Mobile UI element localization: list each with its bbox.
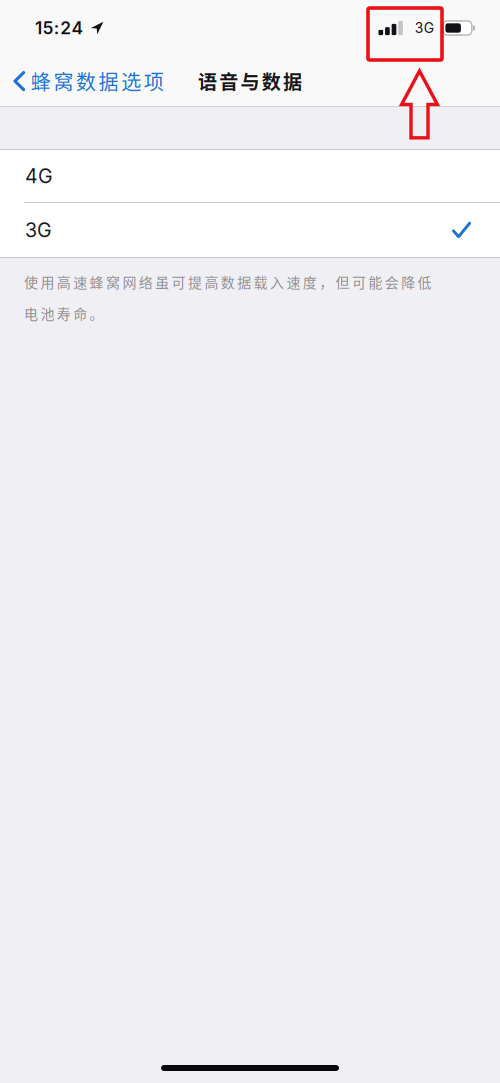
staticText: 蜂 [31, 68, 51, 94]
button[interactable]: 4G [0, 150, 500, 202]
staticText: 4G [25, 164, 53, 188]
staticText: 窝 [53, 68, 73, 94]
staticText: 使用高速蜂窝网络虽可提高数据载入速度，但可能会降低电池寿命。 [24, 266, 448, 329]
staticText: 据 [283, 69, 302, 93]
staticText: 5 [42, 17, 53, 38]
staticText: 4 [72, 17, 84, 38]
staticText: : [54, 17, 60, 38]
button[interactable]: 3G [0, 203, 500, 257]
staticText: 项 [144, 68, 164, 94]
staticText: 音 [219, 69, 238, 93]
staticText: 2 [60, 17, 71, 38]
staticText: 据 [99, 68, 119, 94]
button[interactable]: 返回蜂窝数据选项 [0, 56, 175, 106]
staticText: 语 [198, 69, 217, 93]
staticText: 1 [35, 17, 42, 38]
staticText: 数 [262, 69, 281, 93]
staticText: 3G [415, 20, 434, 36]
staticText: 数 [76, 68, 96, 94]
staticText: 与 [240, 69, 259, 93]
staticText: 选 [121, 68, 141, 94]
staticText: 3G [25, 218, 52, 242]
